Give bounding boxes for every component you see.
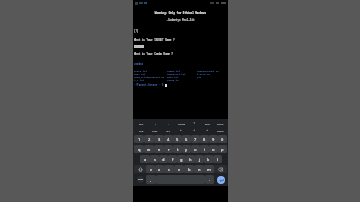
button[interactable]: x: [155, 165, 164, 173]
button[interactable]: PGUP: [214, 120, 227, 126]
button[interactable]: j: [195, 155, 204, 163]
staticText: z: [150, 167, 152, 172]
staticText: k: [207, 157, 210, 162]
staticText: 9: [212, 137, 215, 142]
staticText: ,: [150, 177, 152, 182]
staticText: mail.txt: [134, 72, 146, 75]
button[interactable]: PGDN: [214, 127, 227, 133]
button[interactable]: 5: [173, 135, 182, 143]
button[interactable]: CTRL: [148, 127, 162, 133]
button[interactable]: b: [184, 165, 194, 173]
staticText: w: [147, 147, 151, 152]
staticText: h: [189, 157, 192, 162]
button[interactable]: q: [134, 145, 144, 153]
staticText: Warning: Only for Ethical Hackers: [134, 11, 227, 15]
staticText: t_1.txt: [134, 78, 145, 81]
button[interactable]: c: [164, 165, 174, 173]
button[interactable]: s: [150, 155, 159, 163]
button[interactable]: f: [168, 155, 177, 163]
staticText: superaccount.sh: [197, 69, 219, 72]
staticText: g: [180, 157, 183, 162]
button[interactable]: r: [164, 145, 173, 153]
button[interactable]: ESC: [134, 120, 148, 126]
button[interactable]: 0: [218, 135, 227, 143]
button[interactable]: y: [182, 145, 191, 153]
staticText: combos: [134, 62, 227, 66]
staticText: 0: [221, 137, 224, 142]
button[interactable]: →: [201, 127, 214, 133]
button[interactable]: HOME: [175, 120, 188, 126]
button[interactable]: g: [177, 155, 186, 163]
button[interactable]: e: [154, 145, 164, 153]
staticText: ~/Parrot-Sensor ~ $: [134, 83, 164, 87]
button[interactable]: d: [159, 155, 168, 163]
staticText: HOME: [178, 122, 186, 125]
button[interactable]: -: [162, 120, 175, 126]
button[interactable]: 4: [164, 135, 173, 143]
button[interactable]: /: [148, 120, 162, 126]
staticText: j: [199, 157, 201, 162]
staticText: 6: [185, 137, 188, 142]
button[interactable]: 7: [191, 135, 200, 143]
staticText: ↓: [193, 129, 196, 132]
button[interactable]: z: [146, 165, 155, 173]
staticText: combo.txt: [167, 69, 180, 72]
button[interactable]: ,: [146, 175, 156, 184]
staticText: o: [212, 147, 215, 152]
staticText: CTRL: [152, 129, 158, 132]
button[interactable]: ↓: [188, 127, 201, 133]
staticText: r: [168, 147, 170, 152]
button[interactable]: m: [204, 165, 214, 173]
staticText: d: [162, 157, 165, 162]
staticText: y: [185, 147, 188, 152]
button[interactable]: n: [194, 165, 204, 173]
staticText: s: [154, 157, 156, 162]
button[interactable]: ALT: [162, 127, 175, 133]
button[interactable]: u: [191, 145, 200, 153]
button[interactable]: l: [213, 155, 222, 163]
staticText: e: [158, 147, 161, 152]
button[interactable]: 3: [154, 135, 164, 143]
button[interactable]: END: [201, 120, 214, 126]
button[interactable]: Symbols: [137, 176, 144, 183]
button[interactable]: Enter: [217, 176, 225, 184]
staticText: combolist.txt: [167, 72, 186, 75]
button[interactable]: .: [205, 175, 214, 184]
button[interactable]: t: [173, 145, 182, 153]
button[interactable]: a: [140, 155, 150, 163]
button[interactable]: h: [186, 155, 195, 163]
staticText: →: [206, 129, 209, 132]
button[interactable]: k: [204, 155, 213, 163]
button[interactable]: ↑: [188, 120, 201, 126]
button[interactable]: Backspace: [214, 165, 227, 173]
button[interactable]: p: [218, 145, 227, 153]
button[interactable]: 8: [200, 135, 209, 143]
staticText: PGUP: [217, 122, 224, 125]
staticText: q: [138, 147, 141, 152]
button[interactable]: Shift: [134, 165, 146, 173]
button[interactable]: 9: [209, 135, 218, 143]
staticText: c: [168, 167, 170, 172]
button[interactable]: TAB: [134, 127, 148, 133]
staticText: 1: [138, 137, 141, 142]
staticText: b: [188, 167, 191, 172]
staticText: f: [172, 157, 174, 162]
button[interactable]: ←: [175, 127, 188, 133]
button[interactable]: 6: [182, 135, 191, 143]
staticText: m: [207, 167, 211, 172]
staticText: TAB: [139, 129, 144, 132]
staticText: nord_0.txt@comcast.us: [134, 75, 165, 78]
button[interactable]: w: [144, 145, 154, 153]
staticText: n: [198, 167, 201, 172]
button[interactable]: v: [174, 165, 184, 173]
staticText: v: [178, 167, 181, 172]
button[interactable]: 1: [134, 135, 144, 143]
staticText: What is Your TARGET Name ?: [134, 38, 227, 42]
staticText: ?123: [138, 178, 143, 181]
button[interactable]: o: [209, 145, 218, 153]
staticText: i: [204, 147, 206, 152]
button[interactable]: i: [200, 145, 209, 153]
staticText: -Codertyx Perl-Xit: [134, 18, 227, 22]
button[interactable]: 2: [144, 135, 154, 143]
